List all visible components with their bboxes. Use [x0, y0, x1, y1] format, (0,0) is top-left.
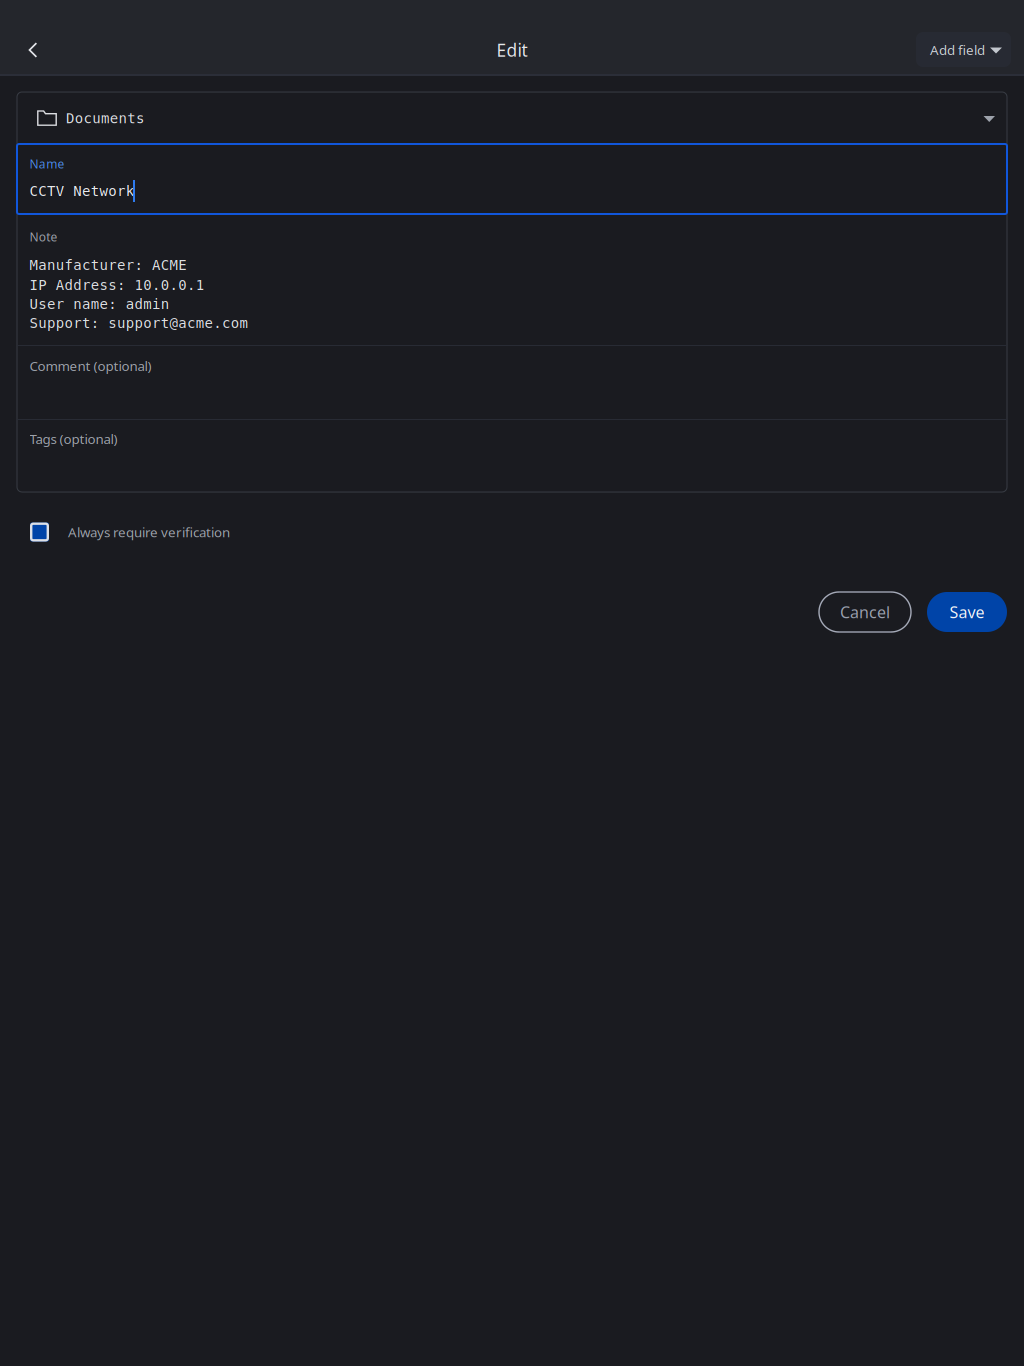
staticText: Support: support@acme.com: [29, 315, 247, 331]
staticText: Edit: [496, 38, 527, 61]
staticText: Add field: [930, 41, 985, 59]
staticText: Name: [29, 156, 64, 172]
staticText: User name: admin: [29, 296, 169, 312]
staticText: Note: [29, 229, 57, 245]
staticText: Documents: [66, 110, 144, 127]
staticText: Save: [949, 601, 984, 623]
staticText: Cancel: [840, 601, 890, 623]
staticText: Manufacturer: ACME: [29, 257, 186, 273]
button[interactable]: Comment (optional): [17, 345, 1007, 419]
button[interactable]: Name: [17, 144, 1007, 214]
button[interactable]: Note: [17, 214, 1007, 345]
button[interactable]: Documents: [17, 92, 1007, 144]
staticText: Comment (optional): [29, 357, 151, 375]
staticText: Tags (optional): [29, 430, 117, 448]
button[interactable]: Always require verification: [0, 519, 1024, 545]
button[interactable]: Tags (optional): [17, 419, 1007, 492]
staticText: Always require verification: [68, 523, 230, 541]
button[interactable]: Add field: [916, 32, 1011, 67]
button[interactable]: Cancel: [819, 592, 911, 632]
button[interactable]: Save: [927, 592, 1007, 632]
staticText: IP Address: 10.0.0.1: [29, 277, 204, 293]
button[interactable]: Back: [9, 26, 57, 74]
staticText: CCTV Network: [29, 183, 134, 199]
